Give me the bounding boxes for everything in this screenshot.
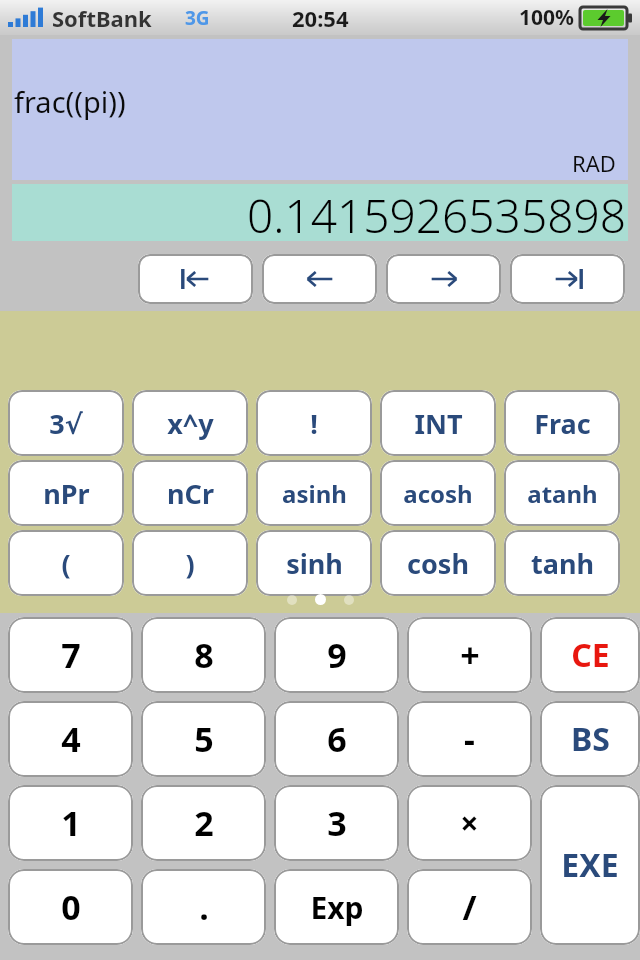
button[interactable]: / [407, 869, 532, 945]
button[interactable]: Exp [274, 869, 399, 945]
staticText: 1 [61, 800, 81, 846]
button[interactable]: tanh [504, 530, 620, 596]
button[interactable]: CE [540, 617, 640, 693]
staticText: ) [185, 545, 195, 582]
button[interactable]: Move to start [138, 254, 253, 304]
button[interactable]: INT [380, 390, 496, 456]
staticText: nPr [43, 475, 90, 512]
button[interactable]: acosh [380, 460, 496, 526]
staticText: 8 [194, 632, 214, 678]
staticText: 100% [519, 3, 574, 32]
button[interactable]: cosh [380, 530, 496, 596]
staticText: asinh [282, 477, 347, 510]
staticText: + [460, 632, 480, 678]
staticText: 0 [61, 884, 81, 930]
button[interactable]: 1 [8, 785, 133, 861]
button[interactable]: ! [256, 390, 372, 456]
button[interactable]: 0 [8, 869, 133, 945]
staticText: cosh [407, 545, 469, 582]
button[interactable]: 8 [141, 617, 266, 693]
staticText: Frac [534, 405, 591, 442]
staticText: acosh [403, 477, 473, 510]
staticText: tanh [531, 545, 594, 582]
staticText: sinh [286, 545, 343, 582]
button[interactable]: 6 [274, 701, 399, 777]
staticText: RAD [572, 148, 616, 178]
button[interactable]: 3 [274, 785, 399, 861]
button[interactable]: nPr [8, 460, 124, 526]
staticText: x^y [167, 405, 214, 442]
staticText: 9 [327, 632, 347, 678]
button[interactable]: sinh [256, 530, 372, 596]
staticText: × [460, 801, 479, 845]
button[interactable]: 5 [141, 701, 266, 777]
staticText: atanh [527, 477, 598, 510]
staticText: 0.1415926535898 [247, 184, 626, 241]
staticText: nCr [167, 475, 214, 512]
button[interactable]: frac((pi)) [12, 39, 628, 180]
button[interactable]: 2 [141, 785, 266, 861]
staticText: / [462, 884, 477, 930]
button[interactable]: 0.1415926535898 [12, 184, 628, 241]
staticText: ( [61, 545, 71, 582]
staticText: 3√ [49, 405, 83, 442]
button[interactable]: - [407, 701, 532, 777]
button[interactable]: atanh [504, 460, 620, 526]
staticText: EXE [561, 843, 619, 887]
staticText: frac((pi)) [14, 82, 126, 121]
staticText: 6 [327, 716, 347, 762]
staticText: - [464, 716, 475, 762]
button[interactable]: 4 [8, 701, 133, 777]
button[interactable]: Move to end [510, 254, 625, 304]
button[interactable]: EXE [540, 785, 640, 945]
button[interactable]: 7 [8, 617, 133, 693]
button[interactable]: 9 [274, 617, 399, 693]
button[interactable]: × [407, 785, 532, 861]
staticText: 2 [194, 800, 214, 846]
button[interactable]: ) [132, 530, 248, 596]
button[interactable]: Frac [504, 390, 620, 456]
button[interactable]: Move right [386, 254, 501, 304]
button[interactable]: BS [540, 701, 640, 777]
button[interactable]: x^y [132, 390, 248, 456]
button[interactable]: . [141, 869, 266, 945]
staticText: SoftBank [52, 3, 152, 33]
staticText: 3G [185, 5, 210, 31]
button[interactable]: asinh [256, 460, 372, 526]
staticText: Exp [310, 887, 364, 928]
staticText: CE [571, 633, 610, 677]
button[interactable]: + [407, 617, 532, 693]
staticText: INT [414, 405, 463, 442]
staticText: ! [310, 405, 318, 442]
staticText: 20:54 [292, 3, 349, 33]
staticText: 4 [61, 716, 81, 762]
button[interactable]: ( [8, 530, 124, 596]
button[interactable]: nCr [132, 460, 248, 526]
button[interactable]: Move left [262, 254, 377, 304]
button[interactable]: 3√ [8, 390, 124, 456]
staticText: BS [571, 717, 610, 761]
staticText: . [199, 884, 209, 930]
staticText: 3 [327, 800, 347, 846]
staticText: 7 [61, 632, 81, 678]
staticText: 5 [194, 716, 214, 762]
